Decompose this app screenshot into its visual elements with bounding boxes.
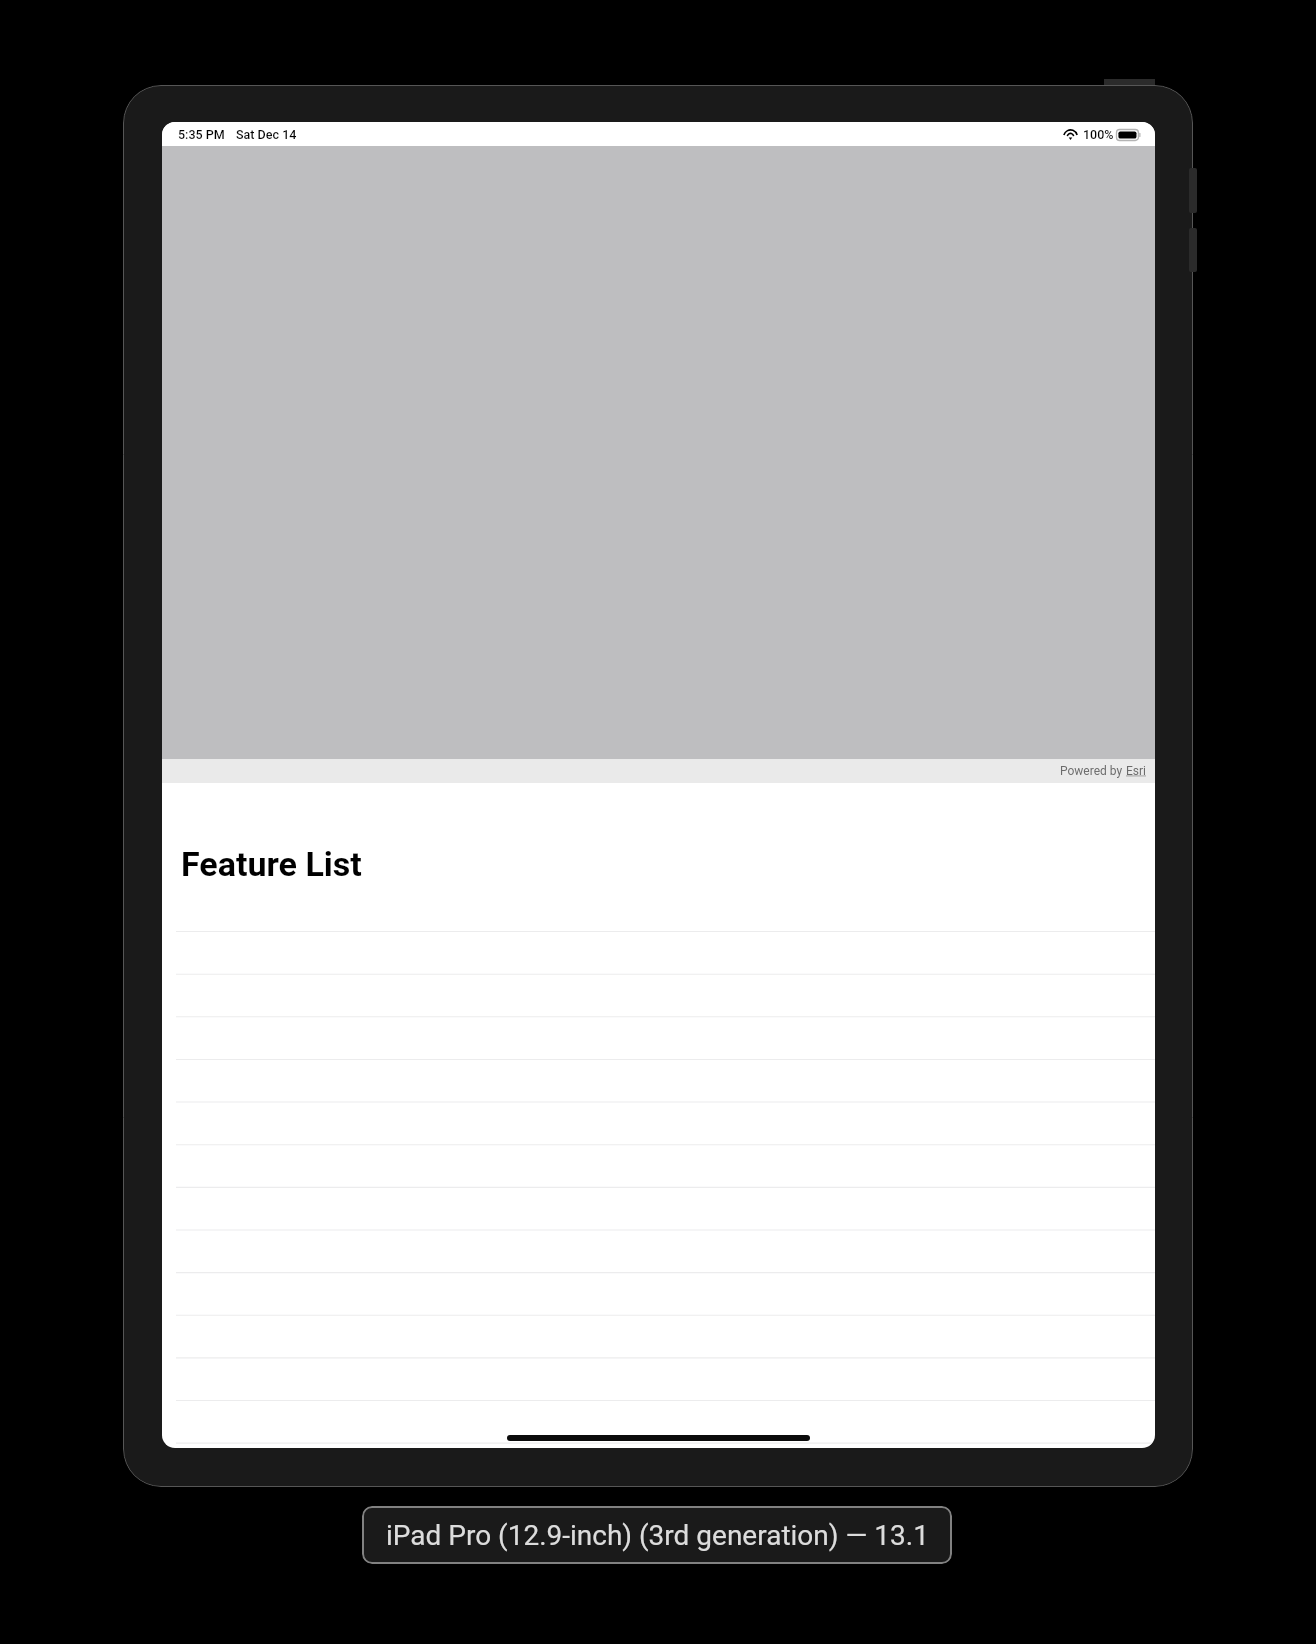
staticText: Powered by bbox=[1060, 764, 1126, 778]
staticText: 100% bbox=[1083, 127, 1114, 142]
staticText: 5:35 PM bbox=[178, 127, 225, 142]
button[interactable]: iPad Pro (12.9-inch) (3rd generation) — … bbox=[362, 1506, 952, 1564]
button[interactable]: Feature 13 bbox=[162, 1447, 1155, 1448]
other: Battery 100 percent bbox=[1116, 129, 1142, 141]
button[interactable]: Powered by bbox=[1060, 764, 1146, 778]
staticText: Feature List bbox=[181, 844, 362, 884]
staticText: iPad Pro (12.9-inch) (3rd generation) — … bbox=[386, 1519, 929, 1552]
button[interactable]: Feature 12 bbox=[162, 1404, 1155, 1447]
staticText: Esri bbox=[1126, 764, 1146, 778]
other: Wi-Fi bbox=[1063, 129, 1078, 140]
staticText: Sat Dec 14 bbox=[236, 127, 297, 142]
